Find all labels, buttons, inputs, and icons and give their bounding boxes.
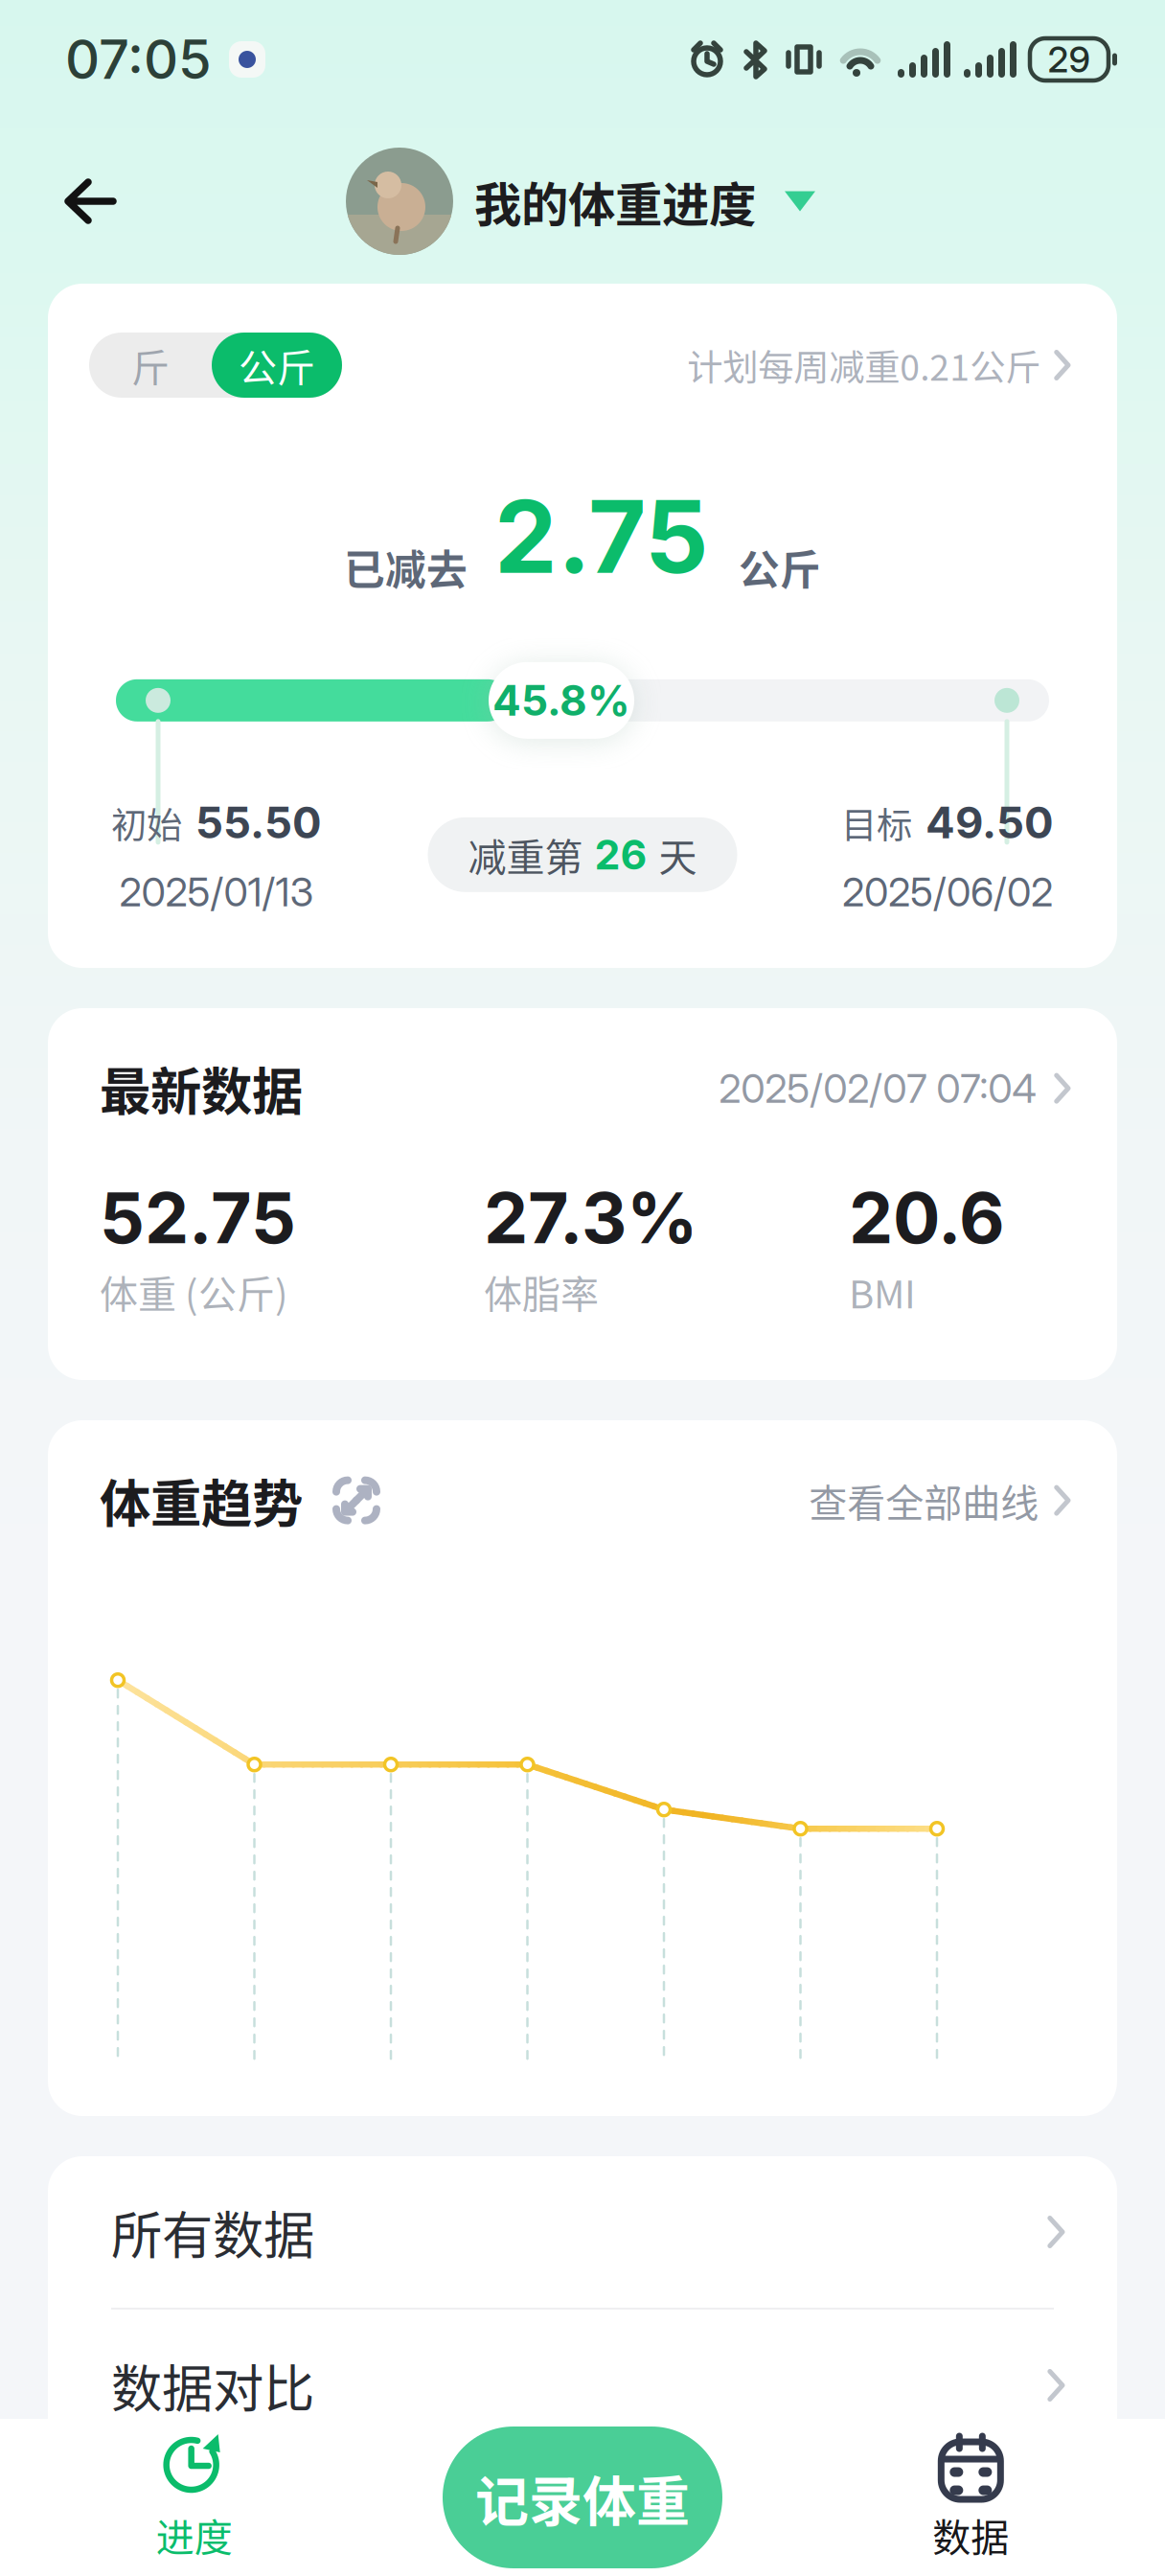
button[interactable]: 计划每周减重0.21公斤	[687, 339, 1073, 391]
staticText: 目标	[841, 797, 912, 849]
staticText: 体脂率	[484, 1264, 599, 1320]
staticText: 55.50	[195, 796, 322, 849]
staticText: 2025/01/13	[119, 868, 314, 916]
staticText: 07:05	[65, 27, 212, 92]
button[interactable]: 进度	[0, 2419, 388, 2576]
staticText: 29	[1048, 38, 1091, 81]
staticText: 20.6	[849, 1175, 1005, 1260]
button[interactable]: 查看全部曲线	[809, 1473, 1073, 1528]
staticText: 最新数据	[100, 1051, 303, 1125]
staticText: 公斤	[239, 337, 315, 393]
staticText: 26	[594, 830, 647, 879]
staticText: 数据对比	[111, 2348, 314, 2422]
staticText: 公斤	[739, 538, 821, 597]
staticText: 已减去	[344, 538, 468, 597]
button[interactable]: 公斤	[212, 333, 342, 398]
staticText: 进度	[156, 2507, 233, 2562]
button[interactable]: 数据	[777, 2419, 1165, 2576]
button[interactable]: 数据对比	[48, 2310, 1117, 2461]
staticText: 2025/06/02	[842, 868, 1053, 916]
staticText: 计划每周减重0.21公斤	[687, 339, 1041, 391]
staticText: BMI	[849, 1264, 916, 1320]
staticText: 斤	[131, 337, 170, 393]
button[interactable]: Back	[38, 152, 144, 250]
staticText: 52.75	[100, 1175, 296, 1260]
staticText: 2.75	[494, 476, 708, 597]
button[interactable]: 最新数据	[48, 1008, 1117, 1125]
staticText: 49.50	[925, 796, 1054, 849]
staticText: 减重第	[468, 827, 583, 882]
staticText: 体重 (公斤)	[100, 1264, 288, 1320]
staticText: 所有数据	[111, 2195, 314, 2269]
staticText: 记录体重	[475, 2459, 690, 2536]
staticText: 我的体重进度	[474, 167, 756, 235]
button[interactable]: 记录体重	[443, 2426, 722, 2568]
staticText: 体重趋势	[100, 1463, 303, 1537]
staticText: 45.8%	[492, 675, 630, 726]
staticText: 查看全部曲线	[809, 1473, 1039, 1528]
staticText: 27.3%	[484, 1175, 697, 1260]
staticText: 2025/02/07 07:04	[719, 1064, 1037, 1112]
staticText: 初始	[111, 797, 182, 849]
button[interactable]: 斤	[89, 333, 212, 398]
staticText: 天	[659, 827, 697, 882]
staticText: 数据	[932, 2507, 1009, 2562]
button[interactable]: 所有数据	[48, 2156, 1117, 2308]
